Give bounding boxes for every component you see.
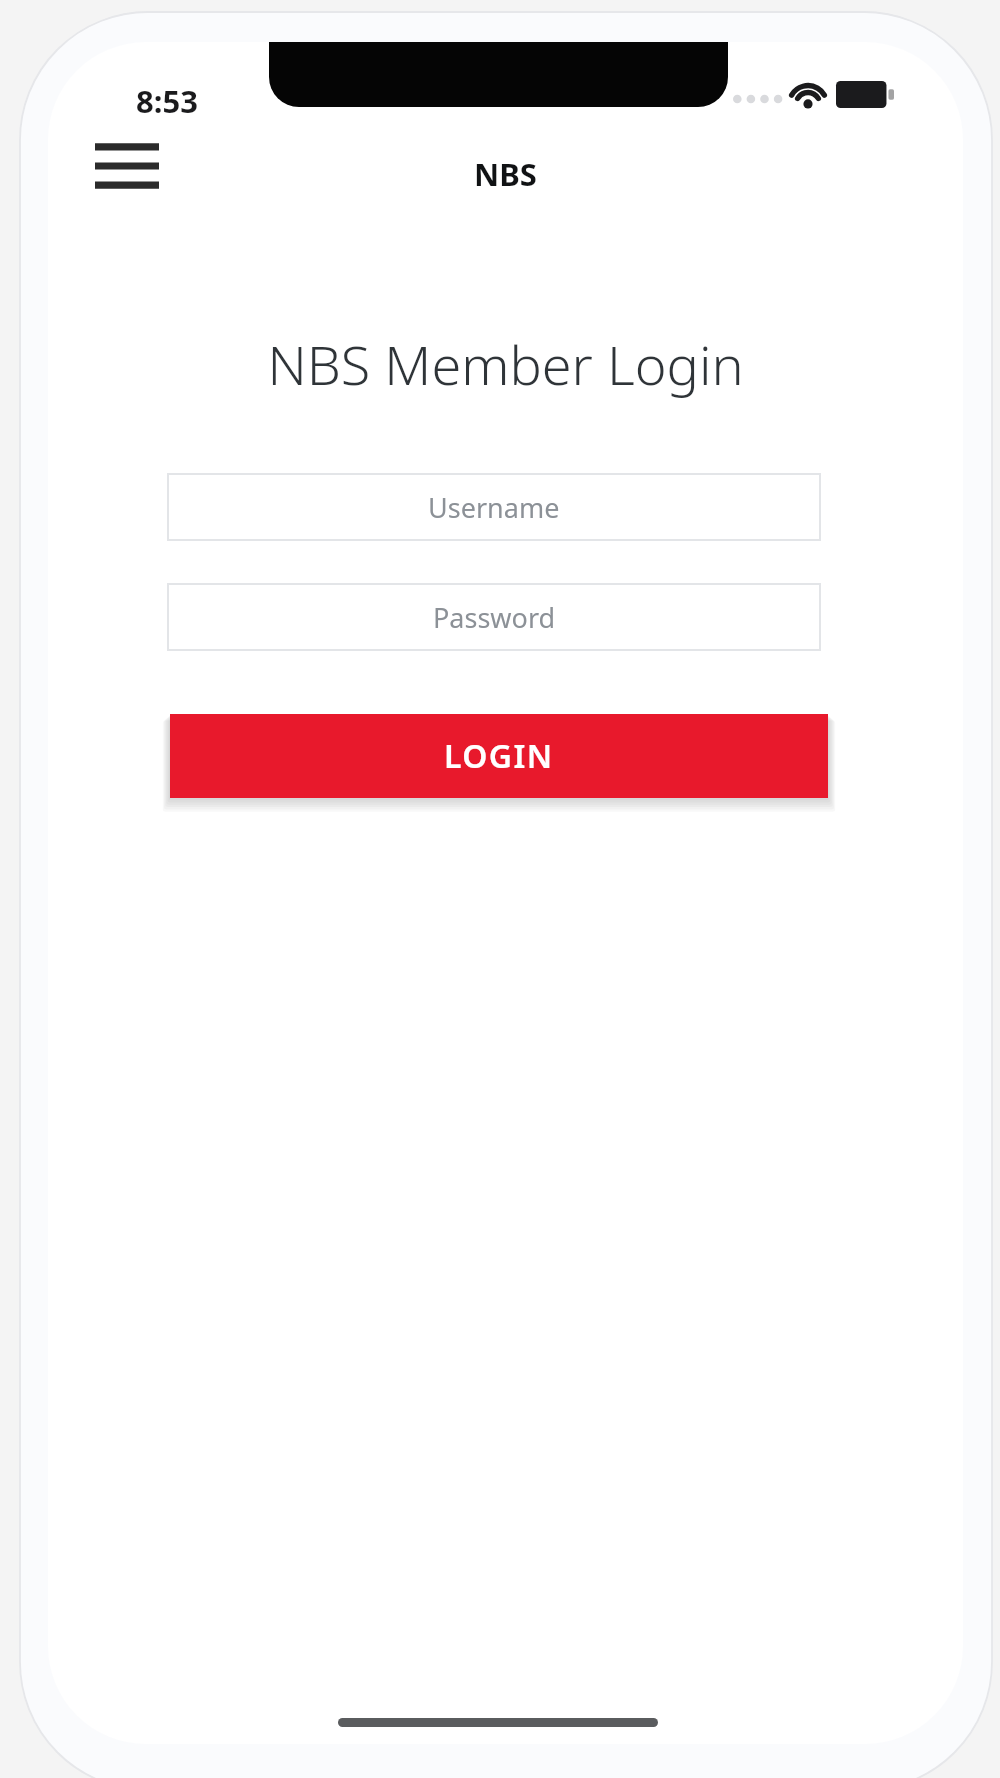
staticText: 8:53 xyxy=(136,80,198,122)
other: Wi-Fi xyxy=(787,73,829,108)
staticText: NBS xyxy=(474,153,537,195)
other: Battery xyxy=(836,81,894,108)
button[interactable]: Open navigation menu xyxy=(80,128,174,204)
staticText: Username xyxy=(428,489,560,526)
staticText: NBS Member Login xyxy=(267,327,744,401)
button[interactable]: LOGIN xyxy=(170,714,828,798)
button[interactable]: Password xyxy=(167,583,821,651)
staticText: LOGIN xyxy=(444,734,554,778)
button[interactable]: Username xyxy=(167,473,821,541)
staticText: Password xyxy=(433,599,556,636)
